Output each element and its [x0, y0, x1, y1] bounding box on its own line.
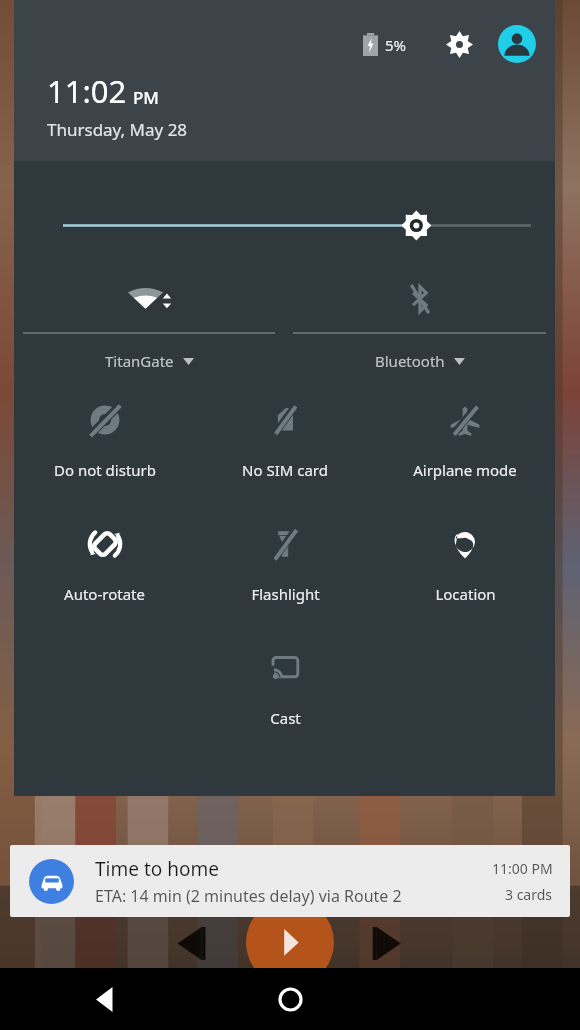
button[interactable]: Do not disturb [14, 380, 195, 504]
button[interactable]: User profile [495, 22, 539, 66]
button[interactable]: Auto-rotate [14, 504, 195, 628]
button[interactable]: Airplane mode [375, 380, 555, 504]
staticText: 11:02 [47, 70, 127, 112]
staticText: ETA: 14 min (2 minutes delay) via Route … [95, 885, 402, 907]
staticText: 5% [385, 35, 407, 55]
staticText: 3 cards [505, 885, 553, 904]
button[interactable]: 11:02 [47, 70, 159, 112]
button[interactable]: Location [375, 504, 555, 628]
staticText: No SIM card [242, 460, 328, 480]
staticText: Bluetooth [375, 351, 445, 371]
staticText: Do not disturb [54, 460, 156, 480]
staticText: Location [435, 584, 496, 604]
button[interactable]: Flashlight [195, 504, 375, 628]
staticText: PM [133, 86, 159, 109]
staticText: Airplane mode [413, 460, 517, 480]
button[interactable]: Bluetooth [284, 265, 555, 380]
staticText: Flashlight [251, 584, 320, 604]
button[interactable]: No SIM card [195, 380, 375, 504]
button[interactable]: Settings [439, 24, 479, 64]
button[interactable]: Time to home [10, 845, 570, 917]
staticText: Cast [270, 708, 301, 728]
button[interactable]: Home [235, 968, 345, 1030]
button[interactable]: Cast [195, 628, 375, 752]
staticText: TitanGate [105, 351, 174, 371]
staticText: Thursday, May 28 [47, 118, 188, 141]
staticText: Auto-rotate [64, 584, 145, 604]
staticText: Time to home [95, 856, 219, 882]
button[interactable]: TitanGate [14, 265, 284, 380]
button[interactable]: Brightness [14, 161, 555, 265]
button[interactable]: 5% [359, 29, 411, 60]
staticText: 11:00 PM [492, 859, 553, 878]
button[interactable]: Back [60, 968, 150, 1030]
